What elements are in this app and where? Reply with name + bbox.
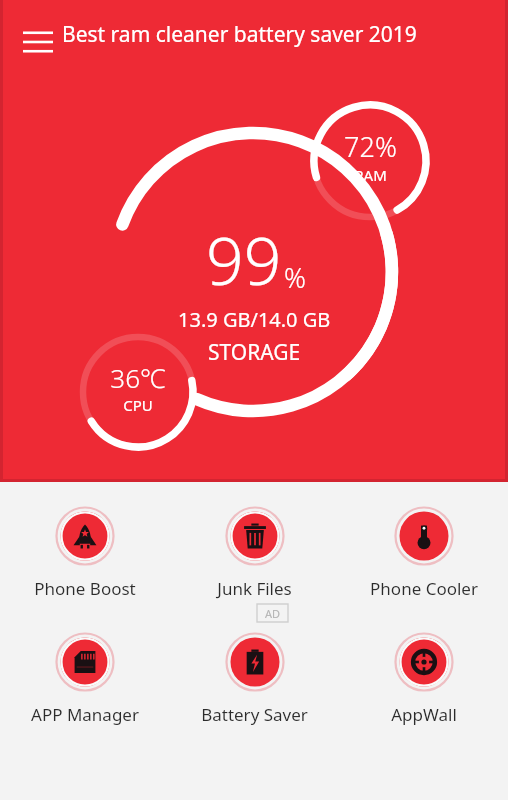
staticText: % <box>284 259 306 296</box>
staticText: APP Manager <box>31 703 139 726</box>
staticText: AppWall <box>391 703 457 726</box>
staticText: Junk Files <box>217 577 292 600</box>
staticText: 36℃ <box>110 360 166 395</box>
staticText: Best ram cleaner battery saver 2019 <box>62 20 488 49</box>
button[interactable]: Open navigation menu <box>14 18 62 66</box>
staticText: Battery Saver <box>201 703 308 726</box>
staticText: 13.9 GB/14.0 GB <box>178 306 331 333</box>
staticText: Phone Cooler <box>370 577 478 600</box>
button[interactable]: AppWall <box>339 630 508 728</box>
button[interactable]: APP Manager <box>0 630 170 728</box>
staticText: 72% <box>344 128 397 165</box>
staticText: RAM <box>354 165 387 185</box>
button[interactable]: Junk Files <box>170 504 339 602</box>
staticText: Phone Boost <box>34 577 136 600</box>
button[interactable]: Battery Saver <box>170 630 339 728</box>
staticText: CPU <box>123 395 153 415</box>
button[interactable]: Phone Boost <box>0 504 170 602</box>
staticText: 99 <box>206 214 282 304</box>
staticText: AD <box>265 606 281 621</box>
button[interactable]: Phone Cooler <box>339 504 508 602</box>
staticText: STORAGE <box>208 338 301 367</box>
